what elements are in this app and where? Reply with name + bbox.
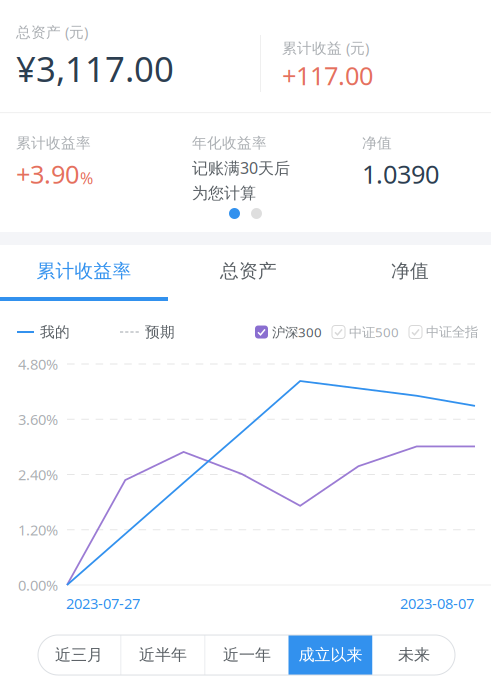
staticText: 净值 xyxy=(362,134,392,152)
staticText: 近半年 xyxy=(139,645,187,665)
button[interactable]: 沪深300 xyxy=(255,323,322,341)
staticText: 1.20% xyxy=(18,520,58,539)
staticText: 总资产 (元) xyxy=(16,22,88,41)
staticText: 1.0390 xyxy=(362,157,439,191)
staticText: 近三月 xyxy=(55,645,103,665)
staticText: 为您计算 xyxy=(192,183,256,203)
staticText: 累计收益率 xyxy=(16,134,91,152)
staticText: 4.80% xyxy=(18,354,58,374)
button[interactable]: 近半年 xyxy=(121,635,204,675)
button[interactable]: 近三月 xyxy=(37,635,120,675)
button[interactable]: 近一年 xyxy=(205,635,288,675)
staticText: 2023-07-27 xyxy=(66,593,140,613)
staticText: +3.90 xyxy=(16,157,79,191)
button[interactable]: 未来 xyxy=(372,635,455,675)
staticText: 我的 xyxy=(40,323,70,341)
staticText: 年化收益率 xyxy=(192,134,267,152)
staticText: 2.40% xyxy=(18,465,58,484)
button[interactable]: 总资产 xyxy=(168,245,329,301)
staticText: ¥3,117.00 xyxy=(16,45,174,91)
staticText: 预期 xyxy=(145,323,175,341)
staticText: 成立以来 xyxy=(298,645,362,665)
staticText: 中证全指 xyxy=(426,324,478,340)
staticText: 近一年 xyxy=(223,645,271,665)
staticText: 0.00% xyxy=(18,575,58,595)
staticText: 记账满30天后 xyxy=(192,157,290,178)
staticText: 未来 xyxy=(398,645,430,665)
button[interactable]: 中证500 xyxy=(322,323,399,341)
staticText: 沪深300 xyxy=(272,323,322,341)
button[interactable]: 累计收益率 xyxy=(0,245,168,301)
staticText: 总资产 xyxy=(220,259,277,282)
staticText: 2023-08-07 xyxy=(400,593,474,613)
staticText: % xyxy=(80,167,93,189)
button[interactable]: 中证全指 xyxy=(399,324,478,340)
button[interactable]: 净值 xyxy=(329,245,491,301)
staticText: 累计收益 (元) xyxy=(282,38,369,57)
staticText: 中证500 xyxy=(349,323,399,341)
staticText: 3.60% xyxy=(18,409,58,429)
button[interactable]: 成立以来 xyxy=(288,635,372,675)
staticText: +117.00 xyxy=(282,58,373,92)
staticText: 净值 xyxy=(391,259,429,282)
staticText: 累计收益率 xyxy=(36,259,131,282)
